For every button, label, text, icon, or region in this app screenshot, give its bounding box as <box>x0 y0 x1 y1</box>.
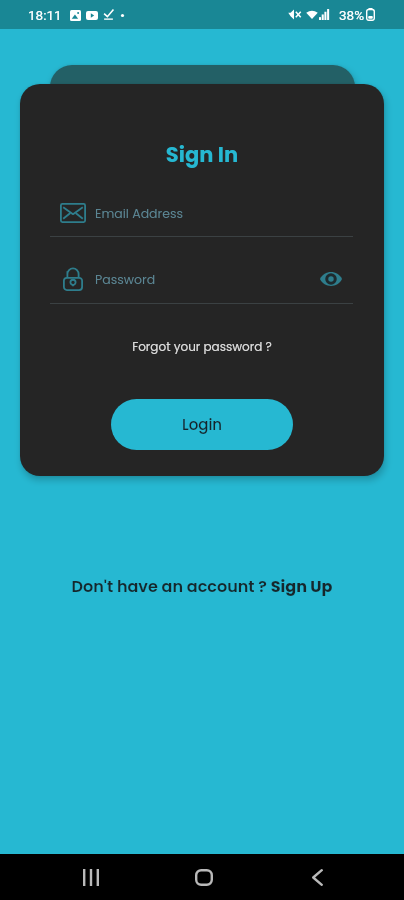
staticText: 18:11 <box>28 7 62 23</box>
other: Show password <box>320 271 342 287</box>
staticText: 38% <box>339 7 365 23</box>
button[interactable]: Don't have an account ? Sign Up <box>0 575 404 597</box>
staticText: Login <box>182 414 223 435</box>
staticText: Sign In <box>20 140 384 169</box>
button[interactable]: Home <box>179 857 229 897</box>
staticText: Password <box>95 271 156 288</box>
button[interactable]: Login <box>111 399 293 450</box>
button[interactable]: Back <box>292 857 342 897</box>
button[interactable]: Recent apps <box>66 857 116 897</box>
staticText: Email Address <box>95 205 184 222</box>
button[interactable]: Email Address <box>60 197 342 229</box>
button[interactable]: Password <box>60 263 342 295</box>
button[interactable]: Forgot your password ? <box>20 338 384 355</box>
